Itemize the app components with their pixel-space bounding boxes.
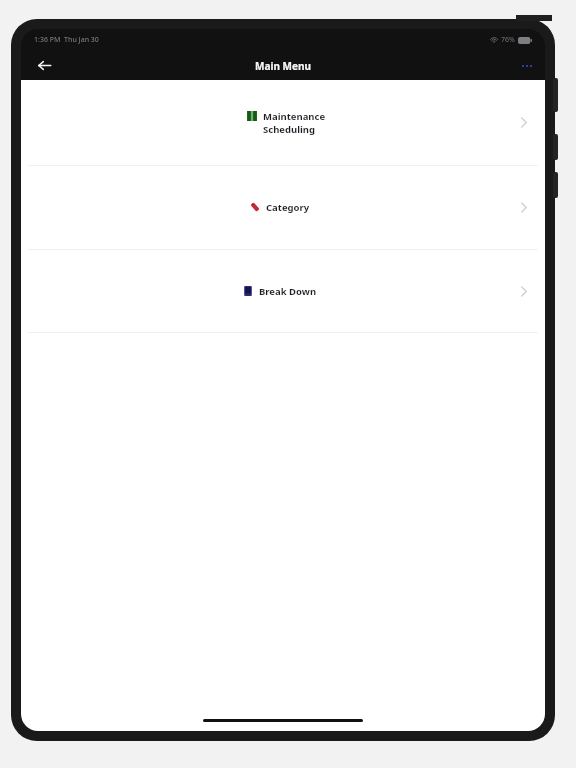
- staticText: Category: [266, 201, 310, 214]
- button[interactable]: More options: [513, 52, 541, 80]
- button[interactable]: Maintenance Scheduling: [21, 80, 545, 165]
- button[interactable]: Back: [27, 51, 61, 80]
- staticText: Maintenance Scheduling: [263, 110, 326, 136]
- button[interactable]: Category: [21, 166, 545, 249]
- staticText: Break Down: [259, 285, 317, 298]
- staticText: 1:36 PM Thu Jan 30: [34, 35, 99, 45]
- staticText: 76%: [501, 35, 515, 45]
- button[interactable]: Break Down: [21, 250, 545, 332]
- staticText: Main Menu: [255, 59, 311, 73]
